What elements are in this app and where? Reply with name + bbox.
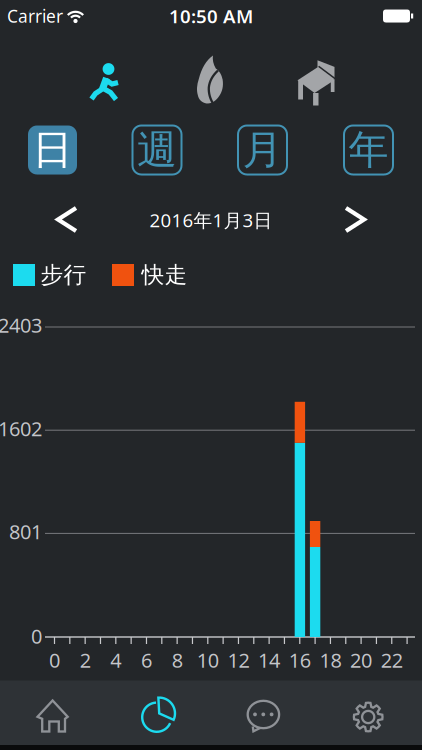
button[interactable]: Previous day — [46, 202, 86, 236]
button[interactable]: Calories — [185, 53, 237, 107]
staticText: 18 — [319, 647, 341, 673]
staticText: 1602 — [0, 415, 42, 442]
staticText: 月 — [242, 125, 282, 174]
staticText: 日 — [32, 125, 72, 174]
staticText: 12 — [227, 647, 249, 673]
button[interactable]: Settings — [317, 681, 422, 745]
staticText: 週 — [137, 125, 177, 174]
button[interactable]: Next day — [336, 202, 376, 236]
staticText: 14 — [258, 647, 280, 673]
staticText: 6 — [141, 647, 152, 673]
button[interactable]: Home — [0, 681, 105, 745]
staticText: 2403 — [0, 312, 42, 338]
staticText: 快走 — [141, 261, 187, 289]
staticText: 22 — [381, 647, 403, 673]
button[interactable]: 月 — [238, 125, 287, 174]
button[interactable]: Charts — [106, 681, 211, 745]
staticText: 10:50 AM — [169, 4, 253, 28]
staticText: 10 — [197, 647, 219, 673]
button[interactable]: Steps — [80, 53, 132, 107]
staticText: 年 — [348, 125, 388, 174]
button[interactable]: 日 — [28, 125, 77, 174]
button[interactable]: Messages — [211, 681, 316, 745]
staticText: 4 — [110, 647, 121, 673]
staticText: 0 — [31, 623, 42, 649]
staticText: 2016年1月3日 — [149, 208, 272, 232]
staticText: 步行 — [40, 261, 86, 289]
staticText: 16 — [289, 647, 311, 673]
staticText: Carrier — [7, 4, 63, 27]
staticText: 801 — [9, 518, 42, 545]
staticText: 20 — [350, 647, 372, 673]
staticText: 2 — [80, 647, 91, 673]
button[interactable]: 年 — [344, 125, 393, 174]
button[interactable]: Sleep — [290, 53, 342, 107]
button[interactable]: 週 — [132, 125, 181, 174]
staticText: 0 — [49, 647, 60, 673]
staticText: 8 — [172, 647, 183, 673]
